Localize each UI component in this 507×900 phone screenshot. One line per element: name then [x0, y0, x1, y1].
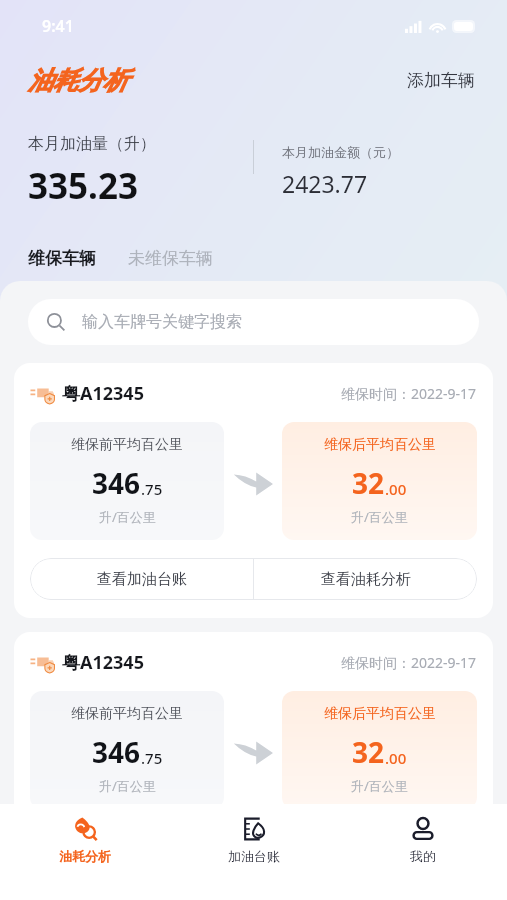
staticText: .75	[141, 748, 163, 768]
staticText: 油耗分析	[59, 848, 111, 864]
staticText: 2423.77	[282, 168, 368, 199]
staticText: 未维保车辆	[128, 248, 213, 269]
button[interactable]: 我的	[338, 804, 507, 900]
staticText: 输入车牌号关键字搜索	[82, 312, 242, 332]
staticText: 加油台账	[228, 848, 280, 864]
staticText: 我的	[410, 848, 436, 864]
staticText: 维保车辆	[28, 248, 96, 269]
button[interactable]: 维保车辆	[28, 248, 96, 269]
staticText: 维保后平均百公里	[324, 436, 436, 454]
staticText: 维保前平均百公里	[71, 436, 183, 454]
staticText: 升/百公里	[99, 508, 156, 526]
button[interactable]: 粤A12345	[14, 632, 493, 827]
button[interactable]: 未维保车辆	[128, 248, 213, 269]
button[interactable]: 输入车牌号关键字搜索	[28, 299, 479, 345]
staticText: 346	[92, 733, 141, 771]
staticText: 维保前平均百公里	[71, 705, 183, 723]
button[interactable]: 粤A12345	[14, 363, 493, 618]
staticText: 升/百公里	[351, 777, 408, 795]
staticText: 本月加油量（升）	[28, 134, 156, 154]
button[interactable]: 查看油耗分析	[254, 558, 477, 600]
staticText: 本月加油金额（元）	[282, 144, 399, 160]
staticText: 335.23	[28, 162, 138, 210]
staticText: .00	[385, 748, 407, 768]
staticText: 维保时间：2022-9-17	[341, 653, 477, 672]
staticText: 查看加油台账	[97, 570, 187, 589]
button[interactable]: 油耗分析	[0, 804, 169, 900]
staticText: 346	[92, 464, 141, 502]
staticText: 查看油耗分析	[321, 570, 411, 589]
staticText: 添加车辆	[407, 70, 475, 91]
staticText: 油耗分析	[28, 65, 128, 96]
staticText: .00	[385, 479, 407, 499]
button[interactable]: 添加车辆	[403, 66, 479, 95]
staticText: 粤A12345	[62, 381, 144, 406]
staticText: 32	[352, 733, 385, 771]
staticText: 32	[352, 464, 385, 502]
staticText: 维保时间：2022-9-17	[341, 384, 477, 403]
button[interactable]: 查看加油台账	[30, 558, 253, 600]
staticText: .75	[141, 479, 163, 499]
staticText: 升/百公里	[99, 777, 156, 795]
staticText: 粤A12345	[62, 650, 144, 675]
button[interactable]: 加油台账	[169, 804, 338, 900]
staticText: 9:41	[42, 15, 74, 37]
staticText: 维保后平均百公里	[324, 705, 436, 723]
staticText: 升/百公里	[351, 508, 408, 526]
